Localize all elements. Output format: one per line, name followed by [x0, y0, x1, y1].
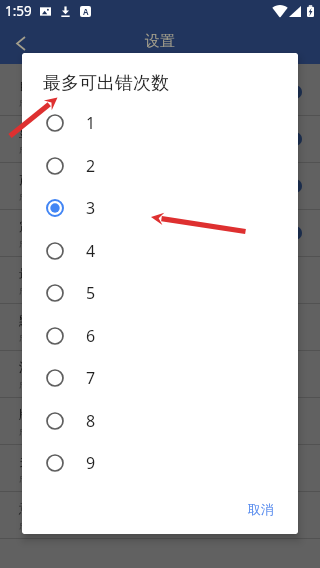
staticText: 清除缓存: [19, 359, 71, 375]
staticText: 点击进行设置: [19, 95, 79, 108]
button[interactable]: 5: [22, 271, 298, 314]
button[interactable]: 显示进度: [0, 116, 320, 163]
button[interactable]: 8: [22, 399, 298, 442]
staticText: 点击进行设置: [19, 236, 79, 249]
staticText: 最多可出错次数: [19, 265, 110, 281]
staticText: 关于我们: [19, 453, 71, 469]
staticText: 点击进行设置: [19, 283, 79, 296]
staticText: 点击进行设置: [19, 142, 79, 155]
staticText: 声音提示: [19, 171, 71, 187]
staticText: 3: [86, 197, 96, 219]
button[interactable]: 7: [22, 356, 298, 399]
staticText: 意见反馈: [19, 500, 71, 516]
button[interactable]: 1: [22, 101, 298, 144]
staticText: 5: [86, 282, 96, 304]
staticText: 默认题库: [19, 312, 71, 328]
button[interactable]: 意见反馈: [0, 492, 320, 539]
staticText: 4: [86, 240, 96, 262]
staticText: 最多可出错次数: [43, 72, 169, 95]
button[interactable]: 3: [22, 186, 298, 229]
button[interactable]: 声音提示: [0, 163, 320, 210]
button[interactable]: 震动反馈: [0, 210, 320, 257]
staticText: 设置: [145, 32, 175, 51]
button[interactable]: 关于我们: [0, 445, 320, 492]
button[interactable]: 6: [22, 314, 298, 357]
staticText: 点击进行设置: [19, 189, 79, 202]
button[interactable]: 4: [22, 229, 298, 272]
button[interactable]: 9: [22, 441, 298, 484]
staticText: 8: [86, 410, 96, 432]
staticText: 点击进行设置: [19, 424, 79, 437]
staticText: 2: [86, 155, 96, 177]
staticText: 取消: [248, 501, 274, 517]
staticText: 9: [86, 452, 96, 474]
button[interactable]: 默认题库: [0, 304, 320, 351]
button[interactable]: 2: [22, 144, 298, 187]
staticText: 显示进度: [19, 124, 71, 140]
staticText: 点击进行设置: [19, 471, 79, 484]
staticText: 版本信息: [19, 406, 71, 422]
staticText: 点击进行设置: [19, 518, 79, 531]
button[interactable]: 最多可出错次数: [0, 257, 320, 304]
staticText: 点击进行设置: [19, 377, 79, 390]
staticText: 1: [86, 112, 96, 134]
staticText: 1:59: [5, 2, 32, 20]
staticText: 点击进行设置: [19, 330, 79, 343]
button[interactable]: 自动锁屏: [0, 69, 320, 116]
staticText: 7: [86, 367, 96, 389]
button[interactable]: Back: [0, 22, 42, 64]
button[interactable]: 版本信息: [0, 398, 320, 445]
staticText: A: [83, 6, 89, 17]
staticText: 6: [86, 325, 96, 347]
button[interactable]: 清除缓存: [0, 351, 320, 398]
staticText: 震动反馈: [19, 218, 71, 234]
button[interactable]: 取消: [242, 495, 280, 523]
staticText: 自动锁屏: [19, 77, 71, 93]
